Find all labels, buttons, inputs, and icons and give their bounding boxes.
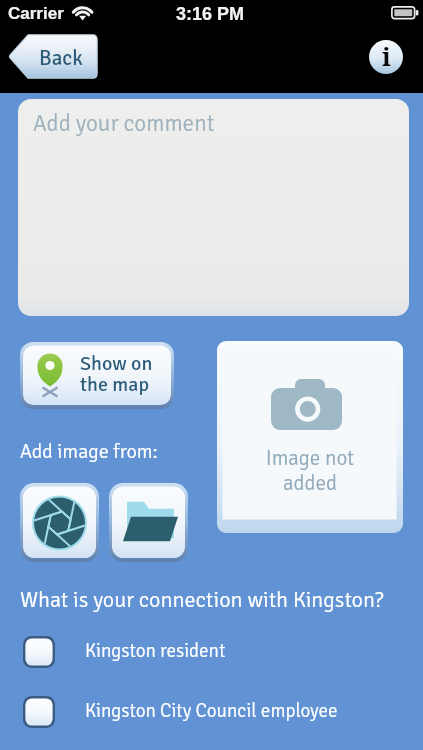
staticText: Carrier <box>8 4 64 23</box>
button[interactable]: Choose from library <box>109 483 188 562</box>
staticText: Kingston resident <box>85 639 226 662</box>
staticText: i <box>382 39 391 73</box>
button[interactable]: Show on <box>20 342 174 409</box>
button[interactable]: Information <box>369 40 403 74</box>
button[interactable]: Back <box>8 34 98 79</box>
staticText: Back <box>39 45 83 71</box>
staticText: 3:16 PM <box>176 4 245 24</box>
staticText: Kingston City Council employee <box>85 699 338 722</box>
staticText: the map <box>80 372 149 397</box>
staticText: Show on <box>80 351 153 376</box>
button[interactable]: Take a photo <box>20 483 99 562</box>
staticText: Image not added <box>217 445 403 496</box>
staticText: Add your comment <box>33 109 215 137</box>
button[interactable]: Add your comment <box>18 99 409 316</box>
button[interactable]: Kingston City Council employee <box>22 695 392 729</box>
staticText: Add image from: <box>20 439 158 464</box>
button[interactable]: Kingston resident <box>22 635 392 669</box>
staticText: What is your connection with Kingston? <box>20 586 384 613</box>
